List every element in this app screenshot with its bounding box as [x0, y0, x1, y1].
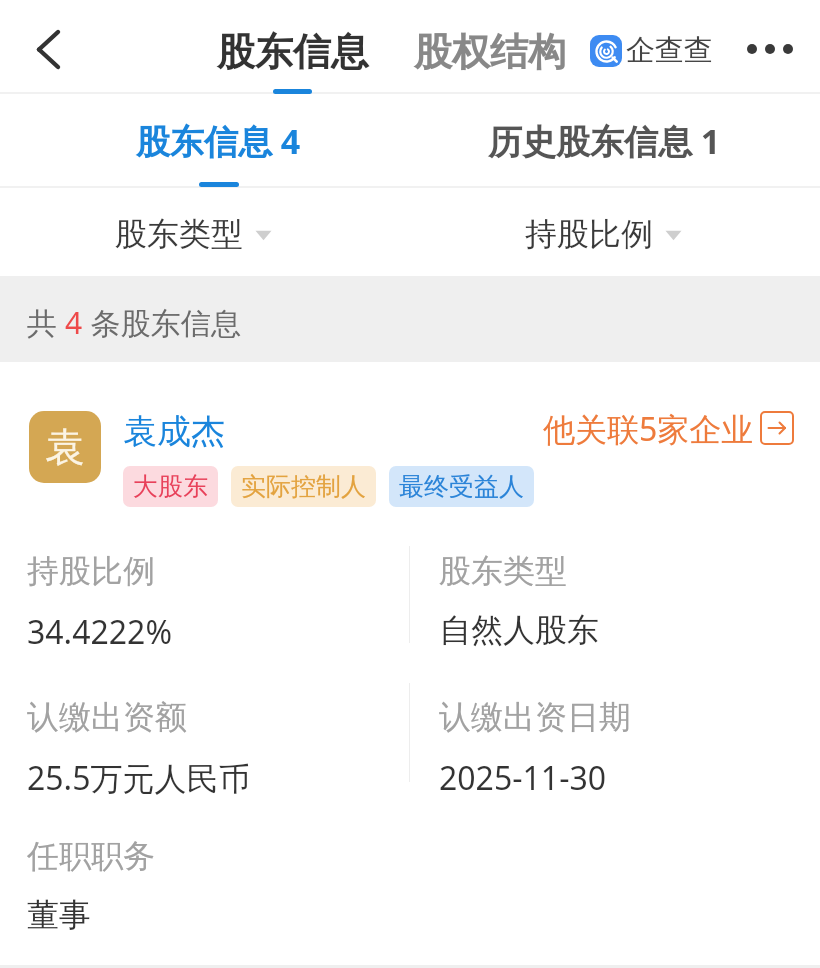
staticText: 大股东 [133, 471, 208, 502]
button[interactable]: Shareholder avatar [29, 411, 101, 483]
staticText: 股东信息 4 [136, 118, 301, 164]
staticText: 34.4222% [27, 610, 172, 654]
staticText: 袁成杰 [123, 410, 225, 453]
button[interactable]: 股东信息 4 [38, 94, 398, 188]
button[interactable]: 持股比例 [441, 190, 766, 278]
staticText: 4 [65, 302, 83, 343]
staticText: 袁 [45, 422, 85, 472]
button[interactable]: 历史股东信息 1 [424, 94, 784, 188]
button[interactable]: 企查查 [590, 32, 713, 69]
staticText: 股权结构 [414, 28, 566, 76]
staticText: 持股比例 [27, 551, 155, 591]
button[interactable]: 他关联5家企业 [543, 407, 794, 449]
staticText: 认缴出资日期 [439, 697, 631, 737]
button[interactable]: 最终受益人 [389, 466, 534, 507]
staticText: 他关联5家企业 [543, 407, 754, 449]
staticText: 企查查 [626, 32, 713, 69]
staticText: 实际控制人 [241, 471, 366, 502]
button[interactable]: 大股东 [123, 466, 218, 507]
staticText: 条股东信息 [83, 302, 241, 343]
button[interactable]: 股东类型 [31, 190, 356, 278]
button[interactable]: 袁成杰 [123, 410, 225, 453]
button[interactable]: 股权结构 [414, 28, 566, 76]
staticText: 共 [27, 302, 65, 343]
staticText: 股东类型 [115, 214, 243, 254]
staticText: 任职职务 [27, 836, 155, 876]
staticText: 2025-11-30 [439, 756, 607, 800]
button[interactable]: 股东信息 [217, 28, 369, 76]
staticText: 股东信息 [217, 28, 369, 76]
button[interactable]: Back [0, 0, 94, 94]
staticText: 认缴出资额 [27, 697, 187, 737]
staticText: 股东类型 [439, 551, 567, 591]
staticText: 历史股东信息 1 [488, 118, 721, 164]
staticText: 25.5万元人民币 [27, 756, 251, 800]
staticText: 持股比例 [525, 214, 653, 254]
staticText: 董事 [27, 895, 91, 935]
staticText: 自然人股东 [439, 610, 599, 650]
button[interactable]: 实际控制人 [231, 466, 376, 507]
button[interactable]: More options [737, 16, 803, 82]
staticText: 最终受益人 [399, 471, 524, 502]
